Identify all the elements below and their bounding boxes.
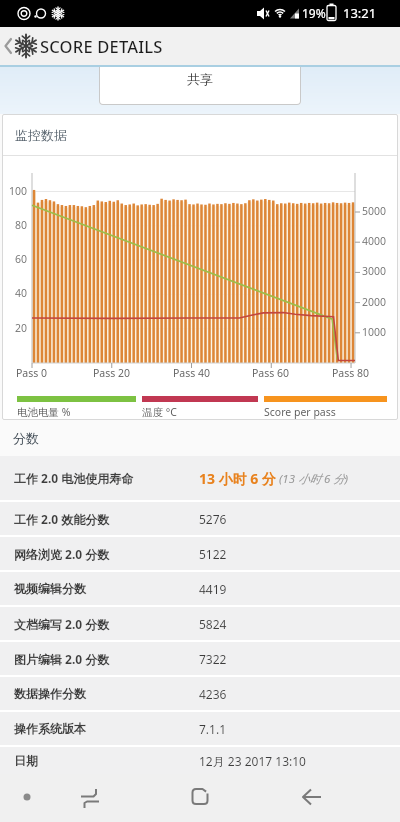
- button[interactable]: 文档编写 2.0 分数: [0, 607, 400, 640]
- staticText: 温度 °C: [142, 405, 177, 419]
- staticText: 4000: [362, 234, 387, 248]
- staticText: 5276: [199, 511, 227, 527]
- staticText: 工作 2.0 电池使用寿命: [14, 470, 199, 486]
- staticText: 4236: [199, 686, 227, 702]
- staticText: 60: [15, 252, 28, 266]
- staticText: 7322: [199, 651, 227, 667]
- staticText: 分数: [13, 430, 39, 446]
- staticText: Pass 20: [93, 366, 131, 380]
- staticText: 1000: [362, 325, 387, 339]
- staticText: 共享: [187, 71, 213, 87]
- staticText: Pass 80: [332, 366, 370, 380]
- staticText: 5824: [199, 616, 227, 632]
- staticText: 5122: [199, 546, 227, 562]
- button[interactable]: 工作 2.0 电池使用寿命: [0, 456, 400, 500]
- staticText: 7.1.1: [199, 721, 227, 737]
- staticText: 100: [9, 184, 28, 198]
- button[interactable]: SCORE DETAILS: [40, 35, 163, 57]
- button[interactable]: 工作 2.0 效能分数: [0, 502, 400, 535]
- staticText: 文档编写 2.0 分数: [14, 616, 199, 632]
- button[interactable]: [134, 774, 267, 822]
- staticText: Pass 60: [252, 366, 290, 380]
- staticText: 视频编辑分数: [14, 581, 199, 596]
- staticText: 日期: [14, 753, 199, 768]
- staticText: 电池电量 %: [17, 405, 71, 419]
- button[interactable]: 共享: [99, 65, 301, 105]
- staticText: 40: [15, 286, 28, 300]
- staticText: 4419: [199, 581, 227, 597]
- staticText: 监控数据: [15, 127, 67, 143]
- button[interactable]: 网络浏览 2.0 分数: [0, 537, 400, 570]
- staticText: 3000: [362, 264, 387, 278]
- staticText: 19%: [302, 5, 326, 21]
- staticText: Pass 0: [16, 366, 48, 380]
- staticText: 13:21: [343, 4, 377, 22]
- staticText: 操作系统版本: [14, 721, 199, 736]
- button[interactable]: 图片编辑 2.0 分数: [0, 642, 400, 675]
- staticText: 20: [15, 321, 28, 335]
- staticText: 数据操作分数: [14, 686, 199, 701]
- staticText: (13 小时 6 分): [276, 471, 349, 487]
- button[interactable]: [0, 774, 134, 822]
- button[interactable]: [267, 774, 400, 822]
- staticText: 工作 2.0 效能分数: [14, 511, 199, 527]
- staticText: 13 小时 6 分: [199, 469, 276, 488]
- staticText: 80: [15, 218, 28, 232]
- staticText: Score per pass: [264, 405, 336, 419]
- staticText: Pass 40: [173, 366, 211, 380]
- button[interactable]: 操作系统版本: [0, 712, 400, 745]
- button[interactable]: 日期: [0, 747, 400, 774]
- staticText: 网络浏览 2.0 分数: [14, 546, 199, 562]
- button[interactable]: 数据操作分数: [0, 677, 400, 710]
- button[interactable]: 视频编辑分数: [0, 572, 400, 605]
- staticText: 2000: [362, 295, 387, 309]
- staticText: 12月 23 2017 13:10: [199, 753, 306, 769]
- staticText: 5000: [362, 204, 387, 218]
- staticText: 图片编辑 2.0 分数: [14, 651, 199, 667]
